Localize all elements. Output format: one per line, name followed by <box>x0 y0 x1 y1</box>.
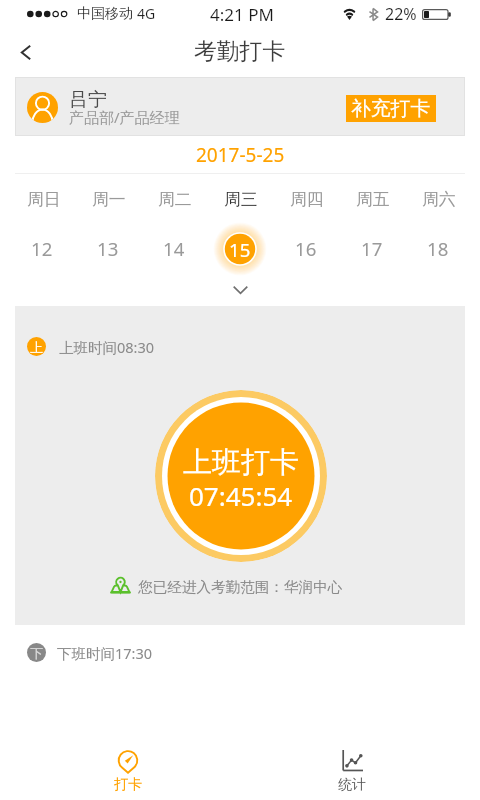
button[interactable]: 17 <box>339 224 405 273</box>
staticText: 4:21 PM <box>210 3 274 26</box>
staticText: 周三 <box>224 189 258 210</box>
staticText: 补充打卡 <box>351 96 431 121</box>
staticText: 12 <box>31 236 53 261</box>
staticText: 考勤打卡 <box>194 37 286 66</box>
staticText: 14 <box>163 236 185 261</box>
staticText: 统计 <box>338 776 366 794</box>
staticText: 13 <box>97 236 119 261</box>
button[interactable]: 13 <box>75 224 141 273</box>
staticText: 周二 <box>158 189 192 210</box>
button[interactable]: 上班打卡 <box>155 390 327 562</box>
staticText: 产品部/产品经理 <box>69 107 180 127</box>
button[interactable]: 打卡 <box>16 738 240 800</box>
button[interactable]: 补充打卡 <box>346 95 436 122</box>
staticText: 周五 <box>356 189 390 210</box>
button[interactable]: 统计 <box>240 738 464 800</box>
staticText: 中国移动 <box>77 5 133 23</box>
staticText: 下班时间17:30 <box>57 643 153 663</box>
staticText: 07:45:54 <box>189 478 293 513</box>
staticText: 18 <box>427 236 449 261</box>
staticText: 周一 <box>92 189 126 210</box>
staticText: 周日 <box>27 189 61 210</box>
button[interactable]: 吕宁 <box>16 78 464 135</box>
button[interactable]: Back <box>0 28 52 76</box>
button[interactable]: 14 <box>141 224 207 273</box>
button[interactable]: 18 <box>405 224 471 273</box>
staticText: 22% <box>385 3 417 25</box>
button[interactable]: Expand calendar <box>0 274 480 306</box>
staticText: 吕宁 <box>69 88 107 112</box>
staticText: 下 <box>30 645 43 661</box>
staticText: 上 <box>30 339 43 355</box>
button[interactable]: 下 <box>0 634 480 674</box>
staticText: 15 <box>229 237 251 262</box>
button[interactable]: 16 <box>273 224 339 273</box>
staticText: 上班打卡 <box>183 444 299 481</box>
staticText: 17 <box>361 236 383 261</box>
button[interactable]: 15 <box>207 224 273 273</box>
staticText: 2017-5-25 <box>196 142 285 168</box>
button[interactable]: 12 <box>9 224 75 273</box>
staticText: 16 <box>295 236 317 261</box>
staticText: 周四 <box>290 189 324 210</box>
staticText: 上班时间08:30 <box>59 337 155 357</box>
staticText: 您已经进入考勤范围：华润中心 <box>138 578 343 596</box>
staticText: 打卡 <box>114 776 142 794</box>
staticText: 4G <box>137 4 156 23</box>
staticText: 周六 <box>422 189 456 210</box>
